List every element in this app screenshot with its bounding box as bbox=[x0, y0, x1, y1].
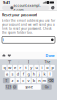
button[interactable]: k bbox=[42, 71, 47, 77]
button[interactable]: I bbox=[19, 59, 38, 65]
button[interactable]: q bbox=[2, 65, 7, 70]
button[interactable]: p bbox=[50, 65, 55, 70]
staticText: o bbox=[46, 65, 48, 70]
button[interactable]: Previous field bbox=[1, 52, 7, 58]
staticText: ⇧ bbox=[5, 78, 8, 83]
button[interactable]: z bbox=[10, 78, 15, 83]
button[interactable]: w bbox=[7, 65, 12, 70]
button[interactable]: j bbox=[37, 71, 41, 77]
staticText: y bbox=[30, 65, 32, 70]
staticText: w bbox=[8, 65, 11, 70]
button[interactable]: x bbox=[15, 78, 20, 83]
staticText: u bbox=[35, 65, 37, 70]
button[interactable]: Reload bbox=[50, 6, 55, 10]
button[interactable]: The bbox=[38, 59, 57, 65]
staticText: Done bbox=[46, 53, 55, 58]
staticText: b bbox=[33, 78, 35, 83]
button[interactable]: Next field bbox=[7, 52, 12, 58]
staticText: n bbox=[38, 78, 40, 83]
staticText: Go bbox=[45, 85, 49, 89]
staticText: “I” bbox=[8, 60, 11, 64]
staticText: space bbox=[25, 85, 33, 89]
button[interactable]: b bbox=[31, 78, 36, 83]
staticText: p bbox=[52, 65, 54, 70]
staticText: ☺ bbox=[13, 85, 17, 89]
button[interactable]: space bbox=[18, 84, 41, 90]
staticText: r bbox=[19, 65, 21, 70]
button[interactable]: d bbox=[15, 71, 20, 77]
button[interactable]: h bbox=[31, 71, 36, 77]
button[interactable]: m bbox=[42, 78, 47, 83]
button[interactable]: e bbox=[13, 65, 17, 70]
staticText: Enter the email address you use for your… bbox=[2, 19, 55, 35]
button[interactable]: account.example.com bbox=[2, 6, 49, 10]
staticText: 9:41 bbox=[3, 0, 10, 5]
button[interactable]: 123 bbox=[5, 84, 12, 90]
staticText: e bbox=[14, 65, 16, 70]
button[interactable]: y bbox=[29, 65, 33, 70]
button[interactable]: a bbox=[5, 71, 9, 77]
staticText: f bbox=[23, 71, 24, 77]
staticText: i bbox=[41, 65, 42, 70]
button[interactable]: “I” bbox=[0, 59, 19, 65]
button[interactable]: v bbox=[26, 78, 31, 83]
button[interactable]: Password options bbox=[51, 38, 54, 41]
staticText: q bbox=[3, 65, 5, 70]
staticText: j bbox=[39, 71, 40, 77]
staticText: z bbox=[11, 78, 13, 83]
staticText: account.example.com bbox=[13, 3, 40, 12]
button[interactable]: r bbox=[18, 65, 23, 70]
staticText: I bbox=[28, 60, 29, 64]
button[interactable]: u bbox=[34, 65, 39, 70]
button[interactable]: Done bbox=[44, 52, 56, 58]
button[interactable]: o bbox=[45, 65, 49, 70]
staticText: The bbox=[45, 60, 51, 64]
staticText: 123 bbox=[5, 85, 11, 89]
staticText: t bbox=[25, 65, 26, 70]
staticText: c bbox=[22, 78, 24, 83]
button[interactable]: n bbox=[37, 78, 41, 83]
staticText: a bbox=[6, 71, 8, 77]
staticText: d bbox=[17, 71, 19, 77]
button[interactable]: c bbox=[21, 78, 25, 83]
button[interactable]: g bbox=[26, 71, 31, 77]
staticText: x bbox=[17, 78, 19, 83]
staticText: ⌫ bbox=[48, 78, 53, 83]
button[interactable]: s bbox=[10, 71, 15, 77]
button[interactable]: ⌫ bbox=[48, 78, 54, 83]
button[interactable]: l bbox=[48, 71, 52, 77]
button[interactable]: ☺ bbox=[12, 84, 17, 90]
staticText: v bbox=[27, 78, 29, 83]
button[interactable]: t bbox=[23, 65, 28, 70]
staticText: h bbox=[33, 71, 35, 77]
staticText: m bbox=[42, 78, 46, 83]
button[interactable]: i bbox=[40, 65, 44, 70]
staticText: Reset your password bbox=[2, 13, 37, 17]
staticText: l bbox=[49, 71, 50, 77]
staticText: g bbox=[27, 71, 29, 77]
staticText: s bbox=[11, 71, 13, 77]
button[interactable]: Go bbox=[41, 84, 52, 90]
button[interactable]: ⇧ bbox=[3, 78, 9, 83]
button[interactable]: f bbox=[21, 71, 25, 77]
staticText: k bbox=[43, 71, 45, 77]
